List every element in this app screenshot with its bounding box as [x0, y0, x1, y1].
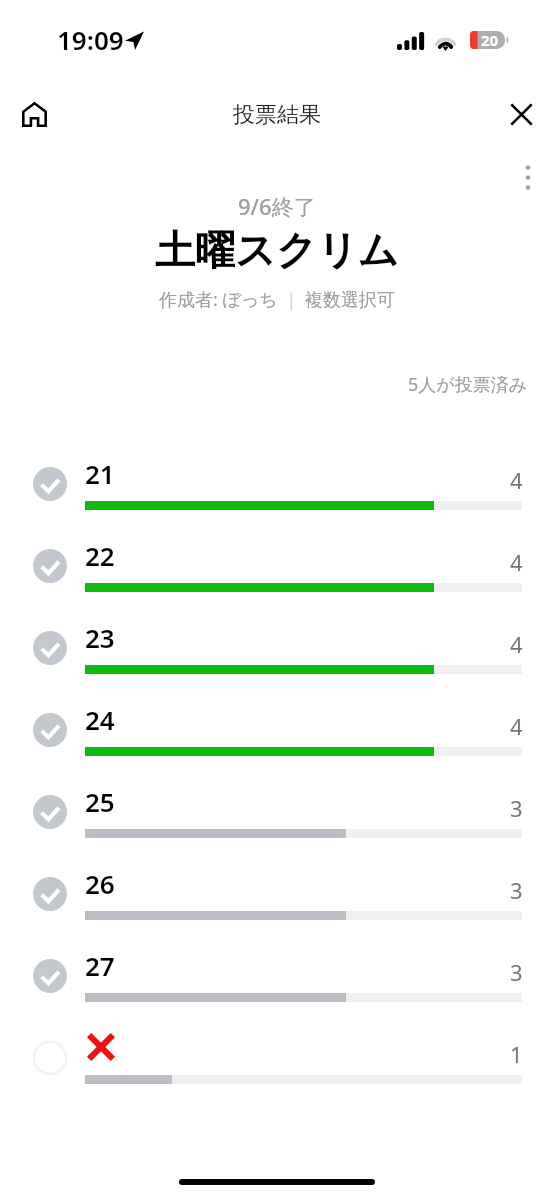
- staticText: 1: [510, 1039, 523, 1069]
- button[interactable]: 24 4票: [0, 705, 554, 767]
- staticText: 3: [510, 793, 523, 823]
- staticText: 23: [85, 620, 115, 655]
- staticText: 24: [85, 702, 115, 737]
- button[interactable]: 25 3票: [0, 787, 554, 849]
- staticText: 25: [85, 784, 115, 819]
- staticText: 4: [510, 465, 523, 495]
- staticText: 22: [85, 538, 115, 573]
- button[interactable]: Close: [499, 92, 543, 136]
- staticText: 3: [510, 875, 523, 905]
- staticText: 4: [510, 711, 523, 741]
- staticText: 27: [85, 948, 115, 983]
- staticText: 26: [85, 866, 115, 901]
- button[interactable]: 26 3票: [0, 869, 554, 931]
- staticText: 土曜スクリム: [155, 225, 399, 275]
- staticText: 20: [481, 30, 499, 48]
- staticText: 5人が投票済み: [408, 372, 528, 397]
- staticText: 投票結果: [233, 101, 321, 129]
- staticText: 4: [510, 547, 523, 577]
- button[interactable]: More options: [509, 159, 547, 197]
- staticText: 9/6終了: [238, 191, 316, 221]
- staticText: 21: [85, 456, 115, 491]
- button[interactable]: Home: [12, 92, 56, 136]
- button[interactable]: 23 4票: [0, 623, 554, 685]
- button[interactable]: 21 4票: [0, 459, 554, 521]
- staticText: 19:09: [57, 22, 124, 57]
- button[interactable]: 27 3票: [0, 951, 554, 1013]
- button[interactable]: 参加不可 1票: [0, 1033, 554, 1095]
- staticText: 4: [510, 629, 523, 659]
- button[interactable]: 22 4票: [0, 541, 554, 603]
- staticText: 3: [510, 957, 523, 987]
- staticText: 作成者: ぼっち ｜ 複数選択可: [159, 287, 395, 312]
